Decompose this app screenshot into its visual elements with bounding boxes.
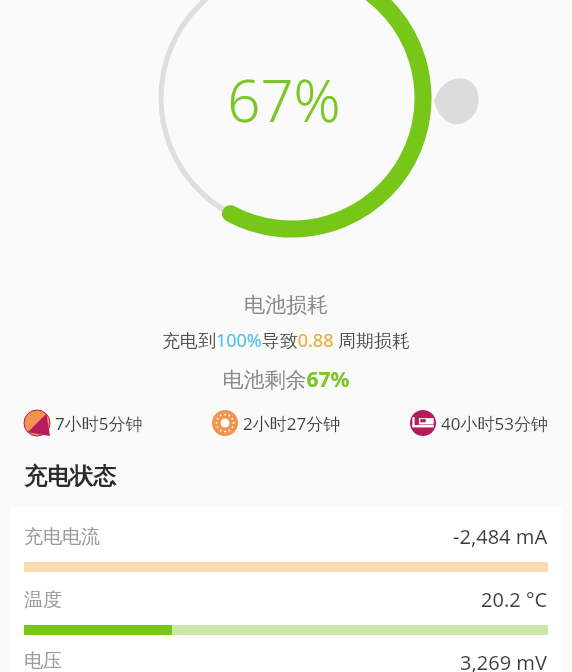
button[interactable]: 充电状态 (24, 462, 116, 491)
staticText: 2小时27分钟 (243, 412, 341, 435)
staticText: 电池损耗 (0, 292, 572, 318)
button[interactable]: 电压 (24, 649, 548, 672)
button[interactable]: 40小时53分钟 (410, 408, 548, 438)
staticText: 温度 (24, 588, 62, 612)
other: 40小时53分钟 (410, 410, 436, 436)
staticText: 40小时53分钟 (441, 412, 548, 435)
other: 2小时27分钟 (212, 410, 238, 436)
staticText: 20.2 °C (481, 586, 548, 613)
staticText: 电压 (24, 649, 62, 672)
staticText: 3,269 mV (460, 649, 548, 672)
staticText: 电池剩余67% (0, 365, 572, 394)
button[interactable]: 温度 (24, 586, 548, 649)
staticText: 67% (227, 60, 341, 139)
button[interactable]: 充电电流 (24, 523, 548, 586)
staticText: -2,484 mA (453, 523, 548, 550)
staticText: 充电电流 (24, 525, 100, 549)
button[interactable]: 7小时5分钟 (24, 408, 143, 438)
staticText: 7小时5分钟 (55, 412, 143, 435)
staticText: 充电到100%导致0.88 周期损耗 (0, 328, 572, 353)
other: 7小时5分钟 (24, 410, 50, 436)
button[interactable]: 2小时27分钟 (212, 408, 341, 438)
